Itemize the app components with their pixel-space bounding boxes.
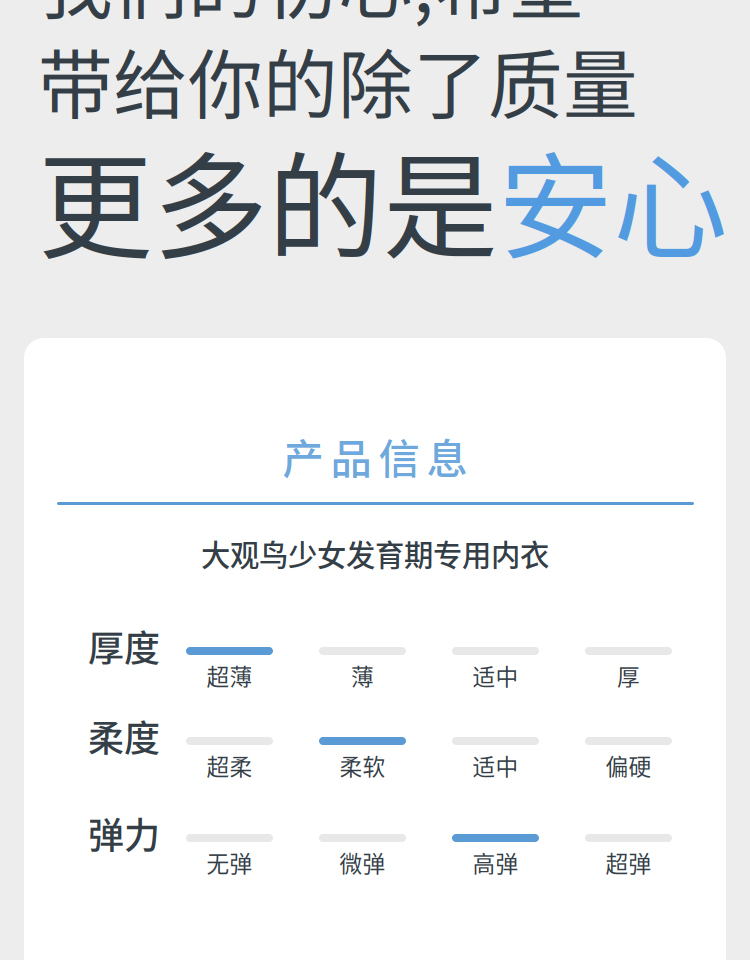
staticText: 偏硬 — [605, 749, 651, 782]
button[interactable]: 厚 — [562, 647, 695, 692]
button[interactable]: 适中 — [429, 737, 562, 782]
staticText: 适中 — [472, 659, 518, 692]
button[interactable]: 柔软 — [296, 737, 429, 782]
staticText: 超弹 — [605, 846, 651, 879]
button[interactable]: 薄 — [296, 647, 429, 692]
button[interactable]: 微弹 — [296, 834, 429, 879]
button[interactable]: 超薄 — [163, 647, 296, 692]
button[interactable]: 偏硬 — [562, 737, 695, 782]
staticText: 柔度 — [88, 710, 160, 762]
staticText: 超薄 — [206, 659, 252, 692]
staticText: 大观鸟少女发育期专用内衣 — [201, 532, 549, 574]
staticText: 超柔 — [206, 749, 252, 782]
staticText: 厚 — [617, 659, 640, 692]
staticText: 弹力 — [88, 807, 160, 859]
button[interactable]: 无弹 — [163, 834, 296, 879]
staticText: 微弹 — [339, 846, 385, 879]
staticText: 高弹 — [472, 846, 518, 879]
staticText: 薄 — [351, 659, 374, 692]
staticText: 厚度 — [88, 620, 160, 672]
staticText: 适中 — [472, 749, 518, 782]
staticText: 产品信息 — [282, 426, 467, 486]
button[interactable]: 高弹 — [429, 834, 562, 879]
staticText: 无弹 — [206, 846, 252, 879]
button[interactable]: 超柔 — [163, 737, 296, 782]
staticText: 更多的是 — [38, 116, 498, 282]
button[interactable]: 适中 — [429, 647, 562, 692]
staticText: 安心 — [498, 116, 728, 282]
staticText: 我们的初心,希望 — [38, 0, 584, 34]
staticText: 带给你的除了质量 — [38, 26, 638, 134]
button[interactable]: 超弹 — [562, 834, 695, 879]
staticText: 柔软 — [339, 749, 385, 782]
